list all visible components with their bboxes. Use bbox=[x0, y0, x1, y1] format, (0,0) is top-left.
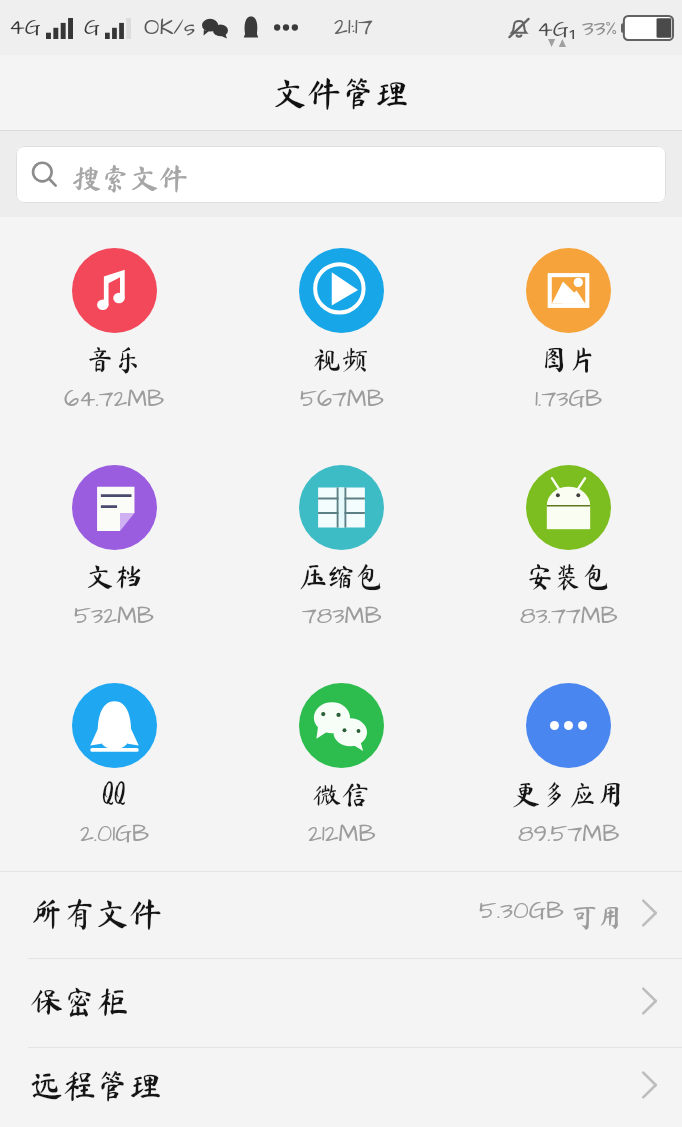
staticText: QQ bbox=[102, 780, 126, 808]
staticText: OK/s bbox=[144, 11, 196, 43]
staticText: 更多应用 bbox=[512, 780, 625, 808]
staticText: 音乐 bbox=[86, 345, 143, 373]
button[interactable]: 更多应用 bbox=[455, 683, 682, 850]
staticText: 微信 bbox=[313, 780, 370, 808]
staticText: 文件管理 bbox=[273, 76, 409, 110]
button[interactable]: 远程管理 bbox=[0, 1048, 682, 1127]
staticText: 保密柜 bbox=[30, 985, 129, 1018]
button[interactable]: 微信 bbox=[228, 683, 455, 850]
button[interactable]: 保密柜 bbox=[0, 959, 682, 1048]
staticText: 212MB bbox=[308, 817, 376, 850]
staticText: 搜索文件 bbox=[72, 163, 189, 192]
button[interactable]: QQ bbox=[0, 683, 228, 850]
button[interactable]: 所有文件 bbox=[0, 872, 682, 959]
staticText: 5.30GB bbox=[479, 893, 564, 928]
staticText: 783MB bbox=[302, 599, 382, 632]
staticText: 83.77MB bbox=[520, 599, 618, 632]
staticText: 所有文件 bbox=[30, 897, 162, 930]
staticText: 压缩包 bbox=[299, 562, 384, 590]
other: 打开 bbox=[639, 1071, 660, 1099]
staticText: 532MB bbox=[74, 599, 154, 632]
button[interactable]: 文档 bbox=[0, 465, 228, 632]
staticText: 1.73GB bbox=[535, 382, 603, 415]
button[interactable]: 搜索文件 bbox=[16, 146, 666, 203]
staticText: 安装包 bbox=[526, 562, 611, 590]
other: 打开 bbox=[639, 899, 660, 927]
staticText: 图片 bbox=[540, 345, 597, 373]
staticText: G bbox=[84, 11, 100, 43]
staticText: 文档 bbox=[86, 562, 143, 590]
staticText: 可用 bbox=[572, 905, 623, 930]
button[interactable]: 压缩包 bbox=[228, 465, 455, 632]
staticText: 33% bbox=[582, 12, 618, 44]
other: 打开 bbox=[639, 987, 660, 1015]
staticText: 2.01GB bbox=[80, 817, 149, 850]
staticText: 21:17 bbox=[334, 10, 373, 43]
staticText: 4G₁ bbox=[537, 11, 577, 45]
button[interactable]: 图片 bbox=[455, 248, 682, 415]
staticText: 89.57MB bbox=[518, 817, 620, 850]
staticText: 视频 bbox=[313, 345, 370, 373]
staticText: 64.72MB bbox=[64, 382, 165, 415]
staticText: 远程管理 bbox=[30, 1069, 162, 1102]
button[interactable]: 安装包 bbox=[455, 465, 682, 632]
staticText: 567MB bbox=[300, 382, 384, 415]
staticText: 4G bbox=[9, 11, 41, 43]
button[interactable]: 音乐 bbox=[0, 248, 228, 415]
button[interactable]: 视频 bbox=[228, 248, 455, 415]
